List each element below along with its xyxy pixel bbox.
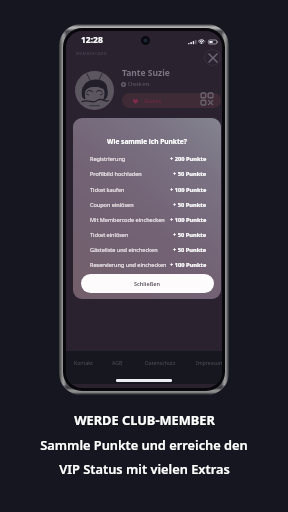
staticText: + 100 Punkte [170, 216, 207, 224]
staticText: + 100 Punkte [170, 186, 207, 194]
staticText: Impressum [196, 359, 222, 366]
staticText: VIP Status mit vielen Extras [59, 460, 230, 477]
staticText: Gästeliste und einchecken [90, 246, 158, 253]
staticText: Wie sammle ich Punkte? [73, 137, 221, 146]
staticText: Ticket kaufen [90, 186, 125, 193]
button[interactable]: Impressum [193, 356, 222, 369]
staticText: Mit Membercode einchecken [90, 216, 165, 223]
staticText: Ticket einlösen [90, 231, 129, 238]
staticText: Tante Suzie [122, 67, 170, 79]
button[interactable]: AGB [109, 356, 126, 369]
staticText: Sammle Punkte und erreiche den [40, 436, 248, 453]
staticText: + 200 Punkte [170, 155, 207, 163]
staticText: MEMBERCARD [76, 51, 108, 56]
staticText: WERDE CLUB-MEMBER [74, 411, 215, 428]
staticText: Reservierung und einchecken [90, 261, 167, 268]
staticText: 12:28 [81, 34, 103, 46]
staticText: Schließen [134, 280, 161, 287]
staticText: Datenschutz [145, 359, 176, 366]
staticText: + 100 Punkte [170, 261, 207, 269]
staticText: + 50 Punkte [173, 246, 207, 254]
staticText: + 50 Punkte [173, 231, 207, 239]
staticText: AGB [112, 359, 123, 366]
staticText: Guest [144, 97, 162, 105]
staticText: Kontakt [74, 359, 93, 366]
button[interactable]: Schließen [81, 274, 214, 293]
staticText: Profilbild hochladen [90, 170, 142, 177]
button[interactable]: Close [204, 49, 221, 66]
staticText: + 50 Punkte [173, 170, 207, 178]
staticText: + 50 Punkte [173, 201, 207, 209]
button[interactable]: Kontakt [71, 356, 96, 369]
button[interactable]: Show QR code [201, 93, 213, 105]
staticText: Registrierung [90, 155, 126, 162]
button[interactable]: Guest [122, 93, 221, 108]
staticText: Coupon einlösen [90, 201, 134, 208]
button[interactable]: Datenschutz [142, 356, 179, 369]
staticText: Check-ins [128, 81, 150, 88]
